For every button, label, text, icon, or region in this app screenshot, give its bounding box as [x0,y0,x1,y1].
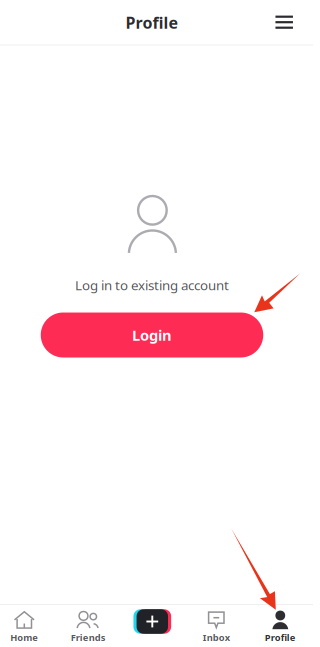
staticText: Log in to existing account [75,276,229,294]
staticText: Profile [125,12,178,33]
button[interactable]: Create [133,609,171,634]
staticText: Login [132,325,172,345]
button[interactable]: Menu [264,2,304,43]
button[interactable]: Login [41,312,263,357]
button[interactable]: Home [0,605,56,647]
staticText: Home [10,631,38,643]
staticText: Inbox [203,631,230,643]
staticText: Friends [71,631,106,643]
staticText: Profile [265,631,296,643]
button[interactable]: Friends [56,605,120,647]
button[interactable]: Inbox [184,605,248,647]
button[interactable]: Profile [248,605,312,647]
